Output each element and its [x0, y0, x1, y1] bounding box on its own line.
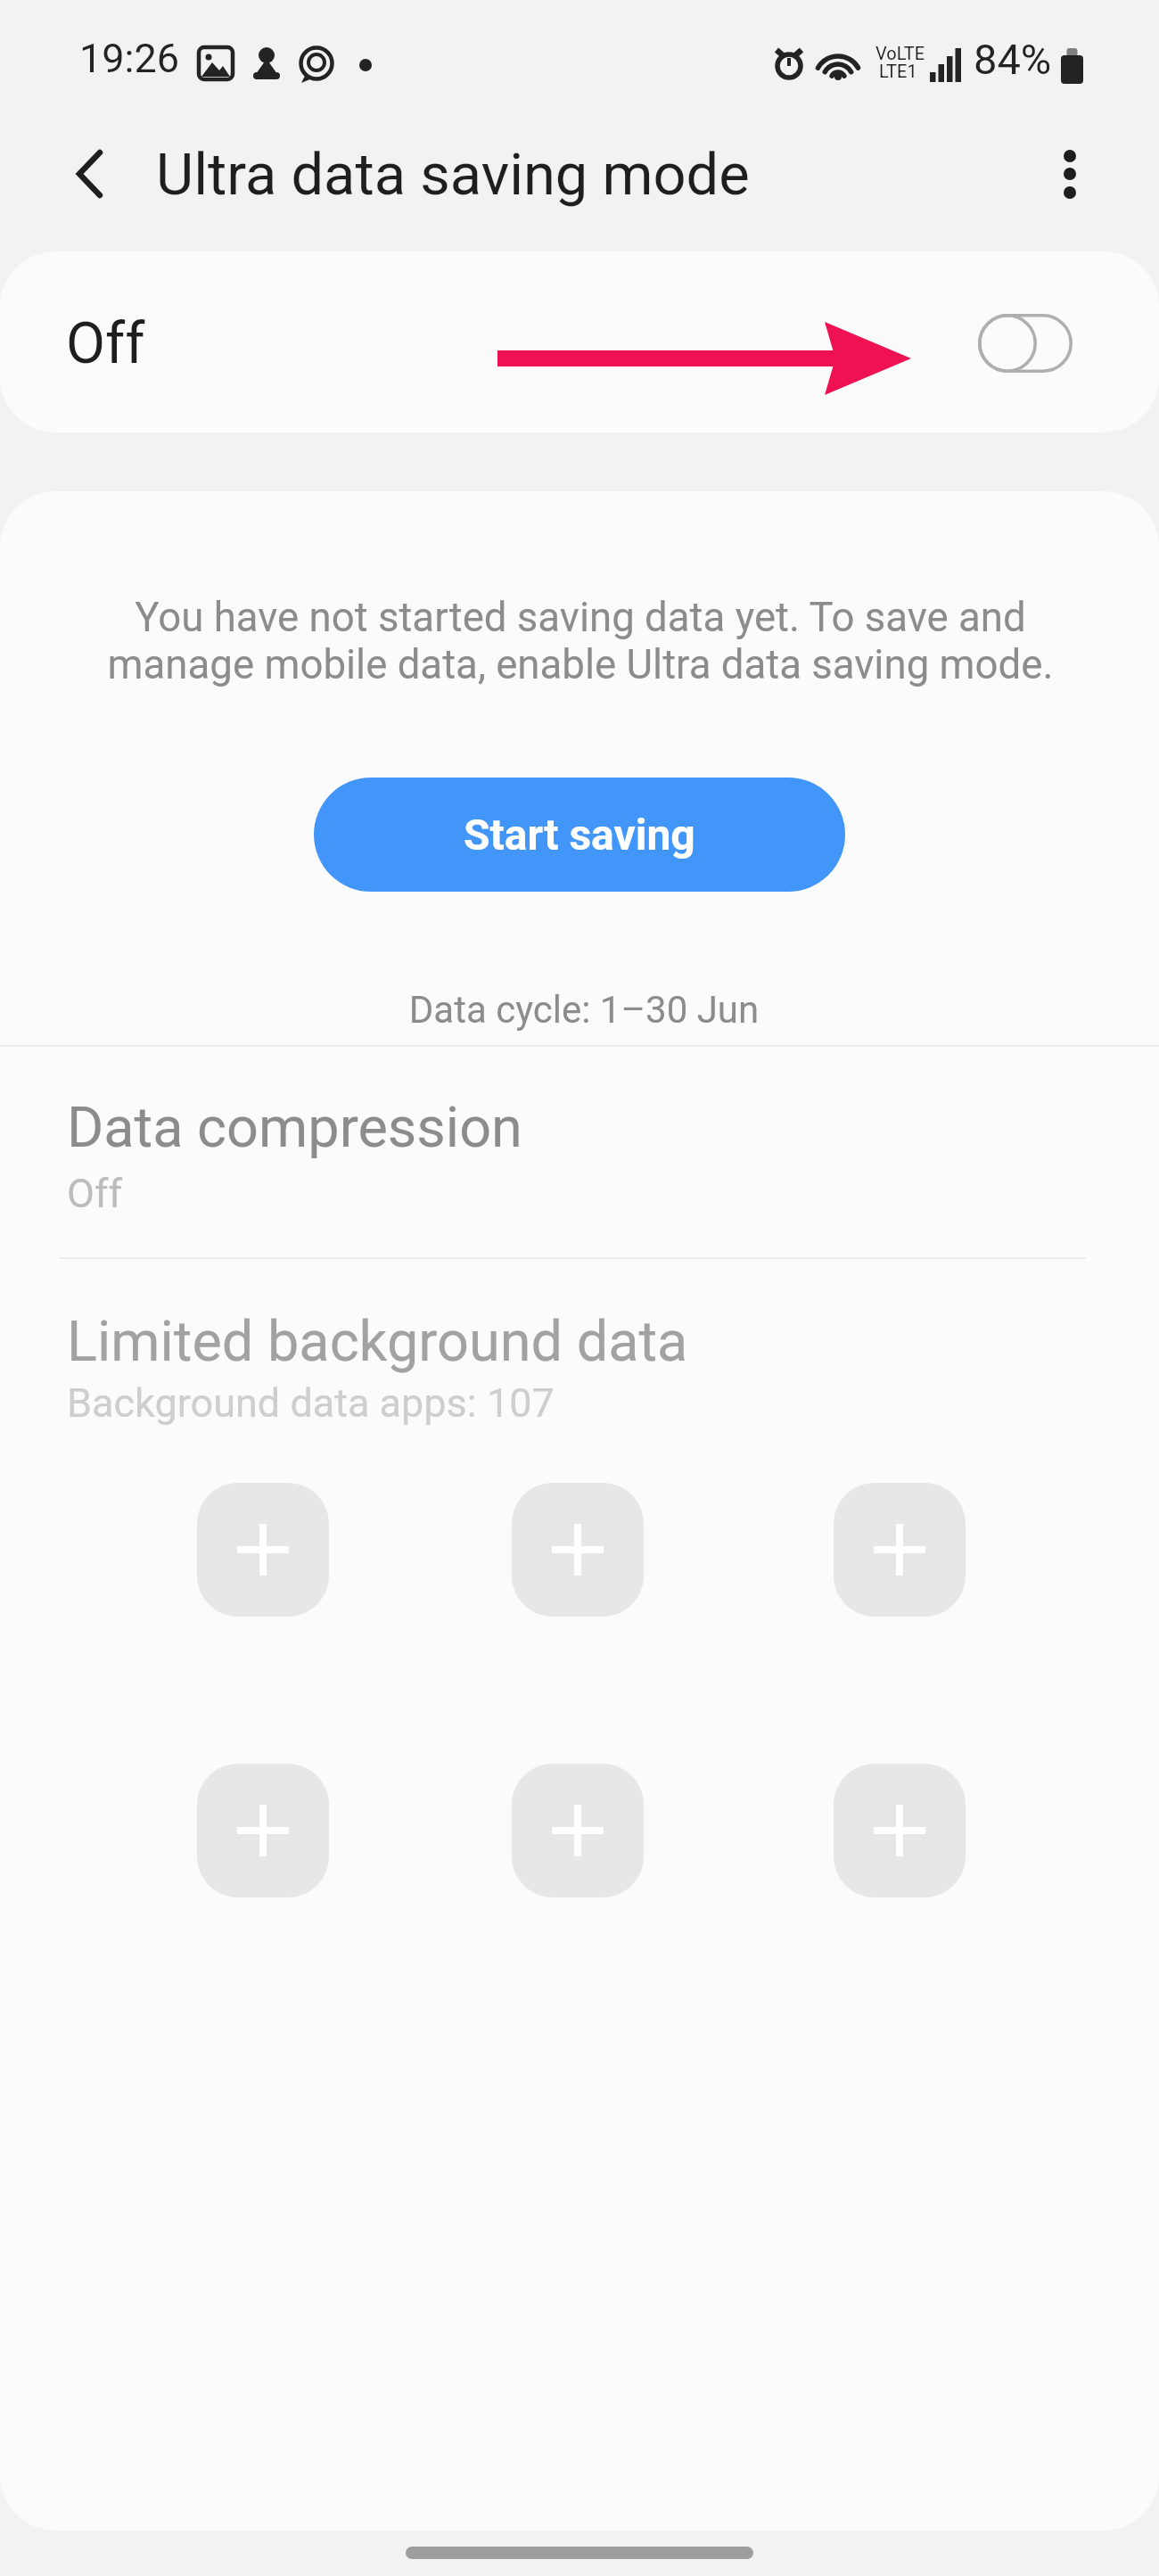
button[interactable]: Add app [197, 1483, 329, 1617]
staticText: Start saving [464, 810, 695, 860]
button[interactable]: Add app [197, 1764, 329, 1897]
staticText: Data cycle: 1–30 Jun [58, 988, 1110, 1032]
staticText: LTE1 [879, 61, 917, 81]
button[interactable]: Navigate up [46, 134, 127, 214]
staticText: VoLTE [875, 43, 925, 63]
button[interactable]: Add app [834, 1483, 966, 1617]
button[interactable]: Off [0, 251, 1159, 432]
staticText: Off [66, 310, 145, 377]
staticText: Off [67, 1170, 123, 1217]
button[interactable]: Limited background data [0, 1288, 1159, 1457]
staticText: 84% [974, 35, 1052, 84]
button[interactable]: Ultra data saving mode, off [942, 278, 1108, 408]
button[interactable]: More options [1031, 134, 1111, 214]
staticText: Data compression [67, 1095, 522, 1161]
staticText: Limited background data [67, 1309, 688, 1375]
button[interactable]: Add app [834, 1764, 966, 1897]
staticText: Background data apps: 107 [67, 1379, 555, 1427]
staticText: 19:26 [79, 35, 180, 82]
button[interactable]: Add app [512, 1483, 644, 1617]
button[interactable]: Add app [512, 1764, 644, 1897]
button[interactable]: Data compression [0, 1074, 1159, 1243]
staticText: You have not started saving data yet. To… [54, 594, 1106, 688]
button[interactable]: Start saving [314, 778, 845, 892]
staticText: Ultra data saving mode [156, 141, 750, 209]
